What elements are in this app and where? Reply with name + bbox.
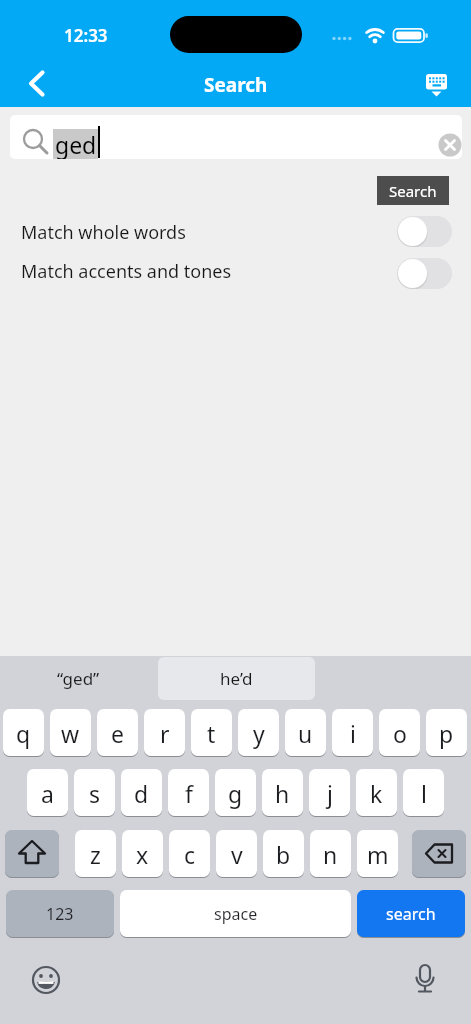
staticText: Search <box>204 72 268 98</box>
button[interactable]: z <box>75 830 116 878</box>
staticText: s <box>89 778 101 809</box>
staticText: Search <box>389 181 437 201</box>
button[interactable]: m <box>357 830 398 878</box>
button[interactable]: search <box>357 890 465 938</box>
staticText: y <box>253 718 265 749</box>
button[interactable] <box>5 830 59 878</box>
button[interactable]: c <box>169 830 210 878</box>
staticText: 12:33 <box>64 24 108 47</box>
staticText: a <box>41 778 54 809</box>
staticText: d <box>134 778 149 809</box>
button[interactable]: f <box>168 769 209 817</box>
button[interactable] <box>26 960 66 1000</box>
button[interactable]: a <box>27 769 68 817</box>
button[interactable] <box>405 960 445 1000</box>
button[interactable]: t <box>191 709 232 757</box>
button[interactable]: space <box>120 890 351 938</box>
button[interactable]: i <box>332 709 373 757</box>
staticText: q <box>16 718 31 749</box>
button[interactable]: u <box>285 709 326 757</box>
staticText: m <box>367 839 389 870</box>
button[interactable]: d <box>121 769 162 817</box>
button[interactable]: j <box>309 769 350 817</box>
staticText: i <box>350 718 356 749</box>
staticText: c <box>184 839 196 870</box>
button[interactable]: “ged” <box>0 657 157 700</box>
staticText: ged <box>55 129 97 159</box>
button[interactable]: n <box>310 830 351 878</box>
button[interactable]: p <box>426 709 467 757</box>
staticText: k <box>370 778 383 809</box>
button[interactable]: 123 <box>6 890 114 938</box>
button[interactable] <box>14 62 58 106</box>
button[interactable]: he’d <box>158 657 315 700</box>
staticText: space <box>214 903 258 925</box>
staticText: p <box>439 718 454 749</box>
button[interactable]: h <box>262 769 303 817</box>
button[interactable]: s <box>74 769 115 817</box>
staticText: h <box>275 778 290 809</box>
staticText: he’d <box>220 667 253 690</box>
button[interactable]: x <box>122 830 163 878</box>
staticText: t <box>207 718 216 749</box>
button[interactable]: b <box>263 830 304 878</box>
button[interactable]: o <box>379 709 420 757</box>
staticText: n <box>323 839 338 870</box>
staticText: “ged” <box>57 667 100 690</box>
button[interactable]: ged <box>10 115 462 159</box>
button[interactable]: g <box>215 769 256 817</box>
button[interactable] <box>397 216 452 247</box>
staticText: r <box>160 718 170 749</box>
staticText: z <box>90 839 101 870</box>
button[interactable]: k <box>356 769 397 817</box>
staticText: e <box>111 718 124 749</box>
staticText: Match accents and tones <box>21 259 232 284</box>
button[interactable]: Search <box>377 176 449 205</box>
staticText: u <box>298 718 313 749</box>
button[interactable]: r <box>144 709 185 757</box>
button[interactable]: w <box>50 709 91 757</box>
staticText: x <box>136 839 149 870</box>
staticText: Match whole words <box>21 220 186 245</box>
button[interactable]: q <box>3 709 44 757</box>
button[interactable] <box>418 66 456 104</box>
button[interactable]: e <box>97 709 138 757</box>
staticText: j <box>327 778 333 809</box>
staticText: l <box>421 778 427 809</box>
button[interactable]: v <box>216 830 257 878</box>
button[interactable]: y <box>238 709 279 757</box>
button[interactable] <box>412 830 466 878</box>
staticText: g <box>228 778 243 809</box>
staticText: o <box>393 718 407 749</box>
staticText: w <box>61 718 80 749</box>
button[interactable] <box>397 258 452 289</box>
button[interactable] <box>438 133 462 157</box>
staticText: b <box>276 839 291 870</box>
staticText: f <box>185 778 193 809</box>
button[interactable]: l <box>403 769 444 817</box>
staticText: search <box>386 903 436 925</box>
staticText: 123 <box>46 903 74 925</box>
staticText: v <box>231 839 243 870</box>
